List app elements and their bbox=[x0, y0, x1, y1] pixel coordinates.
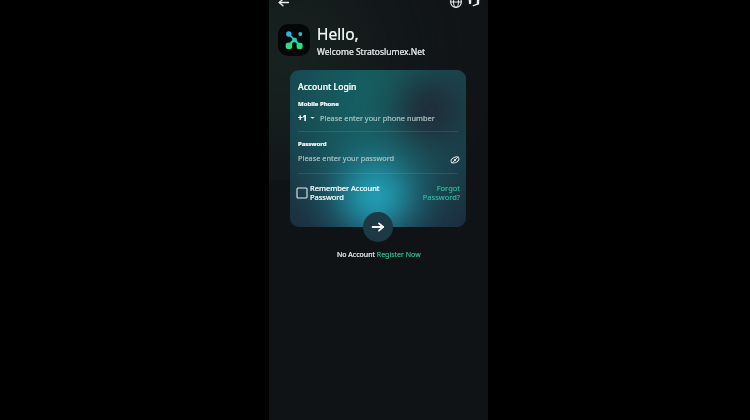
staticText: Account Login bbox=[298, 81, 357, 93]
button[interactable]: Submit login bbox=[363, 212, 393, 242]
button[interactable]: Language bbox=[450, 0, 462, 8]
staticText: Welcome Stratoslumex.Net bbox=[317, 46, 426, 58]
staticText: Please enter your password bbox=[298, 153, 395, 163]
staticText: Mobile Phone bbox=[298, 100, 339, 108]
staticText: Hello, bbox=[317, 23, 359, 44]
staticText: Please enter your phone number bbox=[320, 113, 435, 123]
button[interactable]: Back bbox=[278, 0, 289, 8]
button[interactable]: Remember Account Password bbox=[297, 183, 380, 202]
button[interactable]: Show password bbox=[450, 155, 460, 165]
staticText: +1 bbox=[298, 112, 308, 123]
button[interactable]: No Account Register Now bbox=[337, 250, 421, 260]
staticText: Password bbox=[298, 140, 327, 148]
button[interactable]: Forgot Password? bbox=[398, 183, 460, 202]
button[interactable]: Customer support bbox=[468, 0, 480, 8]
staticText: Remember Account Password bbox=[310, 183, 380, 202]
staticText: Forgot Password? bbox=[398, 183, 460, 202]
